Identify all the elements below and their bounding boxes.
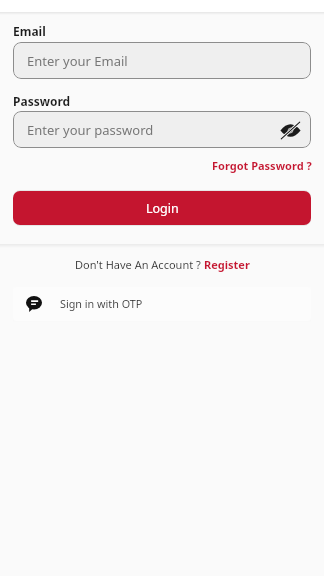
staticText: Login [146,200,179,217]
button[interactable]: Register [204,255,250,274]
button[interactable]: Sign in with OTP [13,287,311,321]
button[interactable]: Toggle password visibility [278,118,302,142]
staticText: Don't Have An Account ? [75,257,204,272]
button[interactable]: Login [13,191,311,225]
button[interactable]: Enter your password [13,111,311,148]
staticText: Forgot Password ? [212,158,312,173]
button[interactable]: Enter your Email [13,42,311,79]
staticText: Password [13,93,71,109]
staticText: Enter your password [27,121,154,139]
button[interactable]: Forgot Password ? [204,156,324,175]
staticText: Email [13,23,46,39]
staticText: Register [204,257,250,272]
staticText: Sign in with OTP [60,296,143,311]
staticText: Enter your Email [27,52,128,70]
